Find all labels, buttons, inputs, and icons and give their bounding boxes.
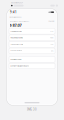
button[interactable]: HOUSING & UTILITIES — [9, 35, 55, 41]
staticText: CASH BALANCE — [10, 58, 21, 60]
staticText: $ 87.07 — [9, 23, 21, 28]
staticText: DECEMBER 1 — DECEMBER 31 — [9, 20, 29, 22]
staticText: 24.80 — [50, 37, 54, 39]
button[interactable]: FOOD / GROCERIES — [9, 28, 55, 34]
staticText: ENTERTAINMENT — [10, 50, 22, 52]
staticText: TRANSPORTATION — [10, 43, 23, 45]
button[interactable]: Account — [56, 4, 58, 7]
staticText: 9.75 — [51, 50, 54, 52]
staticText: 11.05 — [50, 43, 54, 45]
staticText: IMG 30 — [27, 108, 37, 111]
staticText: CHANGE — [48, 20, 54, 22]
staticText: 9:41 — [10, 10, 17, 14]
staticText: DECEMBER 2024 — [9, 16, 21, 18]
button[interactable]: CASH BALANCE — [9, 56, 55, 62]
staticText: HOUSING & UTILITIES — [10, 37, 23, 39]
staticText: DECEMBER 2024 — [11, 2, 23, 4]
button[interactable]: EXPORT THIS MONTH'S DATA — [9, 63, 55, 69]
button[interactable]: CHANGE — [48, 20, 54, 22]
button[interactable]: ENTERTAINMENT — [9, 48, 55, 54]
staticText: FOOD / GROCERIES — [10, 30, 22, 32]
button[interactable]: Previous month — [11, 5, 13, 6]
staticText: 31.20 — [50, 30, 54, 32]
button[interactable]: TRANSPORTATION — [9, 41, 55, 47]
staticText: EXPORT THIS MONTH'S DATA — [10, 65, 29, 67]
